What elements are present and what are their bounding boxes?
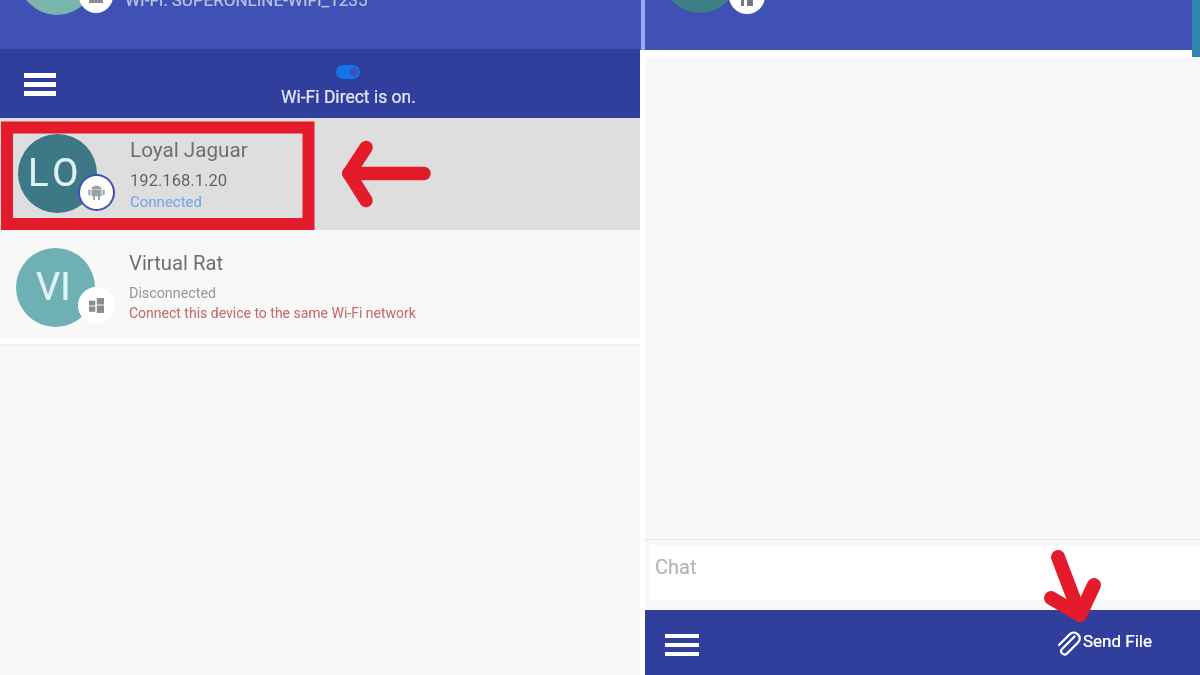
staticText: VI	[36, 265, 71, 310]
button[interactable]: Chat	[650, 545, 1200, 600]
staticText: Connected	[130, 193, 203, 211]
staticText: 192.168.1.20	[130, 171, 228, 190]
staticText: Disconnected	[129, 285, 217, 302]
staticText: Connect this device to the same Wi-Fi ne…	[129, 305, 416, 321]
staticText: WI-FI: SUPERONLINE-WIFI_1235	[125, 0, 368, 10]
staticText: LO	[28, 151, 84, 196]
staticText: Chat	[655, 555, 697, 578]
staticText: Send File	[1083, 631, 1152, 651]
staticText: Wi-Fi Direct is on.	[281, 87, 416, 108]
button[interactable]: Menu	[16, 60, 64, 108]
button[interactable]	[0, 118, 641, 230]
button[interactable]: Send File	[1055, 631, 1152, 656]
button[interactable]	[0, 230, 641, 343]
button[interactable]: Menu	[658, 621, 706, 669]
staticText: Virtual Rat	[129, 251, 224, 275]
staticText: Loyal Jaguar	[130, 138, 248, 162]
